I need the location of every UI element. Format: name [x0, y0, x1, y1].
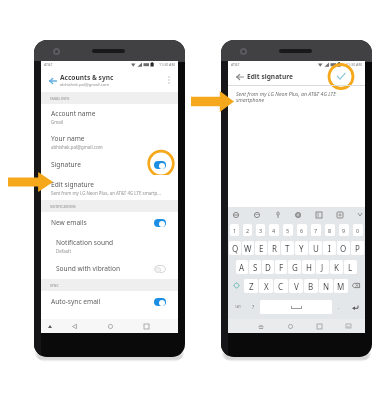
- staticText: Edit signature: [247, 72, 293, 81]
- button[interactable]: 2: [243, 224, 252, 236]
- button[interactable]: O: [337, 241, 350, 255]
- button[interactable]: Keyboard option: [231, 210, 240, 219]
- button[interactable]: W: [242, 241, 254, 255]
- button[interactable]: Recent apps: [305, 319, 334, 333]
- button[interactable]: A: [236, 260, 248, 274]
- staticText: C: [278, 281, 284, 292]
- button[interactable]: T: [281, 241, 294, 255]
- button[interactable]: K: [330, 260, 343, 274]
- button[interactable]: C: [274, 279, 288, 293]
- staticText: New emails: [51, 218, 87, 227]
- button[interactable]: R: [268, 241, 280, 255]
- button[interactable]: 7: [311, 224, 321, 236]
- button[interactable]: Show keyboard: [45, 319, 55, 333]
- button[interactable]: S: [249, 260, 261, 274]
- button[interactable]: Your name: [41, 129, 178, 154]
- button[interactable]: Enter: [345, 295, 364, 319]
- button[interactable]: P: [351, 241, 364, 255]
- staticText: V: [294, 281, 299, 292]
- button[interactable]: Keyboard option: [335, 210, 344, 219]
- button[interactable]: Auto-sync email: [41, 291, 178, 312]
- staticText: SYNC: [50, 283, 59, 288]
- staticText: .: [338, 304, 340, 311]
- button[interactable]: Collapse toolbar: [356, 211, 363, 218]
- staticText: 1: [233, 227, 237, 234]
- button[interactable]: Shift: [229, 276, 244, 295]
- button[interactable]: M: [334, 279, 348, 293]
- staticText: R: [272, 243, 277, 254]
- button[interactable]: 9: [339, 224, 349, 236]
- button[interactable]: Recent apps: [128, 319, 164, 333]
- button[interactable]: 5: [283, 224, 293, 236]
- button[interactable]: Account name: [41, 104, 178, 129]
- button[interactable]: ?: [247, 295, 259, 319]
- button[interactable]: Keyboard option: [273, 210, 282, 219]
- button[interactable]: 1: [230, 224, 239, 236]
- staticText: Accounts & sync: [60, 73, 114, 82]
- button[interactable]: N: [319, 279, 333, 293]
- button[interactable]: Save: [327, 68, 355, 85]
- button[interactable]: V: [289, 279, 303, 293]
- button[interactable]: D: [262, 260, 274, 274]
- staticText: 3: [259, 227, 263, 234]
- button[interactable]: I: [323, 241, 336, 255]
- staticText: Account name: [51, 109, 96, 118]
- staticText: !#1: [235, 304, 242, 310]
- button[interactable]: Space: [260, 300, 332, 314]
- button[interactable]: Home: [92, 319, 128, 333]
- staticText: 4: [272, 227, 276, 234]
- staticText: D: [265, 262, 271, 273]
- staticText: H: [306, 262, 312, 273]
- button[interactable]: Keyboard option: [252, 210, 261, 219]
- staticText: K: [334, 262, 339, 273]
- staticText: N: [323, 281, 330, 292]
- button[interactable]: H: [302, 260, 315, 274]
- staticText: Q: [232, 243, 239, 254]
- button[interactable]: Back: [56, 319, 92, 333]
- button[interactable]: Navigate up: [233, 70, 246, 83]
- staticText: F: [279, 262, 284, 273]
- button[interactable]: Keyboard option: [293, 210, 302, 219]
- staticText: Edit signature: [51, 180, 94, 189]
- button[interactable]: Z: [244, 279, 258, 293]
- button[interactable]: G: [288, 260, 301, 274]
- button[interactable]: New emails: [41, 212, 178, 233]
- button[interactable]: X: [259, 279, 273, 293]
- button[interactable]: 4: [269, 224, 279, 236]
- staticText: W: [244, 243, 252, 254]
- button[interactable]: E: [255, 241, 267, 255]
- button[interactable]: J: [316, 260, 329, 274]
- button[interactable]: Navigate up: [46, 74, 59, 87]
- button[interactable]: L: [344, 260, 357, 274]
- staticText: I: [328, 243, 331, 254]
- button[interactable]: Edit signature: [41, 175, 178, 200]
- staticText: 8: [328, 227, 332, 234]
- staticText: Auto-sync email: [51, 297, 101, 306]
- staticText: Your name: [51, 134, 85, 143]
- button[interactable]: Y: [295, 241, 308, 255]
- staticText: abhishek.pal@gmail.com: [51, 144, 103, 150]
- button[interactable]: 0: [353, 224, 363, 236]
- button[interactable]: Hide keyboard: [246, 319, 276, 333]
- staticText: J: [321, 262, 324, 273]
- button[interactable]: 6: [297, 224, 307, 236]
- button[interactable]: Keyboard option: [314, 210, 323, 219]
- button[interactable]: F: [275, 260, 287, 274]
- button[interactable]: 8: [325, 224, 335, 236]
- staticText: T: [285, 243, 290, 254]
- button[interactable]: !#1: [229, 295, 247, 319]
- button[interactable]: B: [304, 279, 318, 293]
- button[interactable]: More options: [164, 75, 174, 85]
- button[interactable]: Backspace: [348, 276, 364, 295]
- button[interactable]: Change keyboard: [334, 319, 363, 333]
- button[interactable]: Home: [276, 319, 305, 333]
- button[interactable]: Sound with vibration: [41, 258, 178, 279]
- button[interactable]: 3: [256, 224, 265, 236]
- staticText: Signature: [51, 160, 81, 169]
- button[interactable]: Q: [229, 241, 241, 255]
- button[interactable]: Signature: [41, 154, 178, 175]
- button[interactable]: Notification sound: [41, 233, 178, 258]
- button[interactable]: U: [309, 241, 322, 255]
- staticText: abhishek.pal@gmail.com: [60, 82, 110, 88]
